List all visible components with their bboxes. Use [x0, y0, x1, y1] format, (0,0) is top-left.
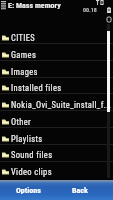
button[interactable]: Nokia_Ovi_Suite_install_f... — [0, 98, 113, 115]
staticText: Back — [72, 186, 88, 195]
staticText: E: Mass memory — [8, 1, 61, 10]
button[interactable]: Back — [57, 180, 102, 200]
staticText: Games — [11, 50, 37, 60]
button[interactable]: Sound files — [0, 148, 113, 165]
staticText: Installed files — [11, 83, 62, 93]
staticText: Sound files — [11, 150, 53, 160]
staticText: 00.18 — [83, 6, 97, 13]
button[interactable]: Other — [0, 115, 113, 132]
staticText: Video clips — [11, 167, 52, 177]
button[interactable]: Games — [0, 48, 113, 65]
button[interactable]: Options — [0, 180, 56, 200]
button[interactable]: Video clips — [0, 165, 113, 182]
staticText: Playlists — [11, 134, 43, 144]
staticText: Images — [11, 67, 38, 77]
staticText: CITIES — [11, 33, 36, 43]
button[interactable]: Installed files — [0, 81, 113, 98]
button[interactable]: Images — [0, 65, 113, 82]
button[interactable]: CITIES — [0, 31, 113, 48]
staticText: Options — [16, 186, 41, 195]
staticText: Other — [11, 117, 32, 127]
button[interactable]: Playlists — [0, 132, 113, 149]
staticText: Nokia_Ovi_Suite_install_f... — [11, 100, 112, 110]
